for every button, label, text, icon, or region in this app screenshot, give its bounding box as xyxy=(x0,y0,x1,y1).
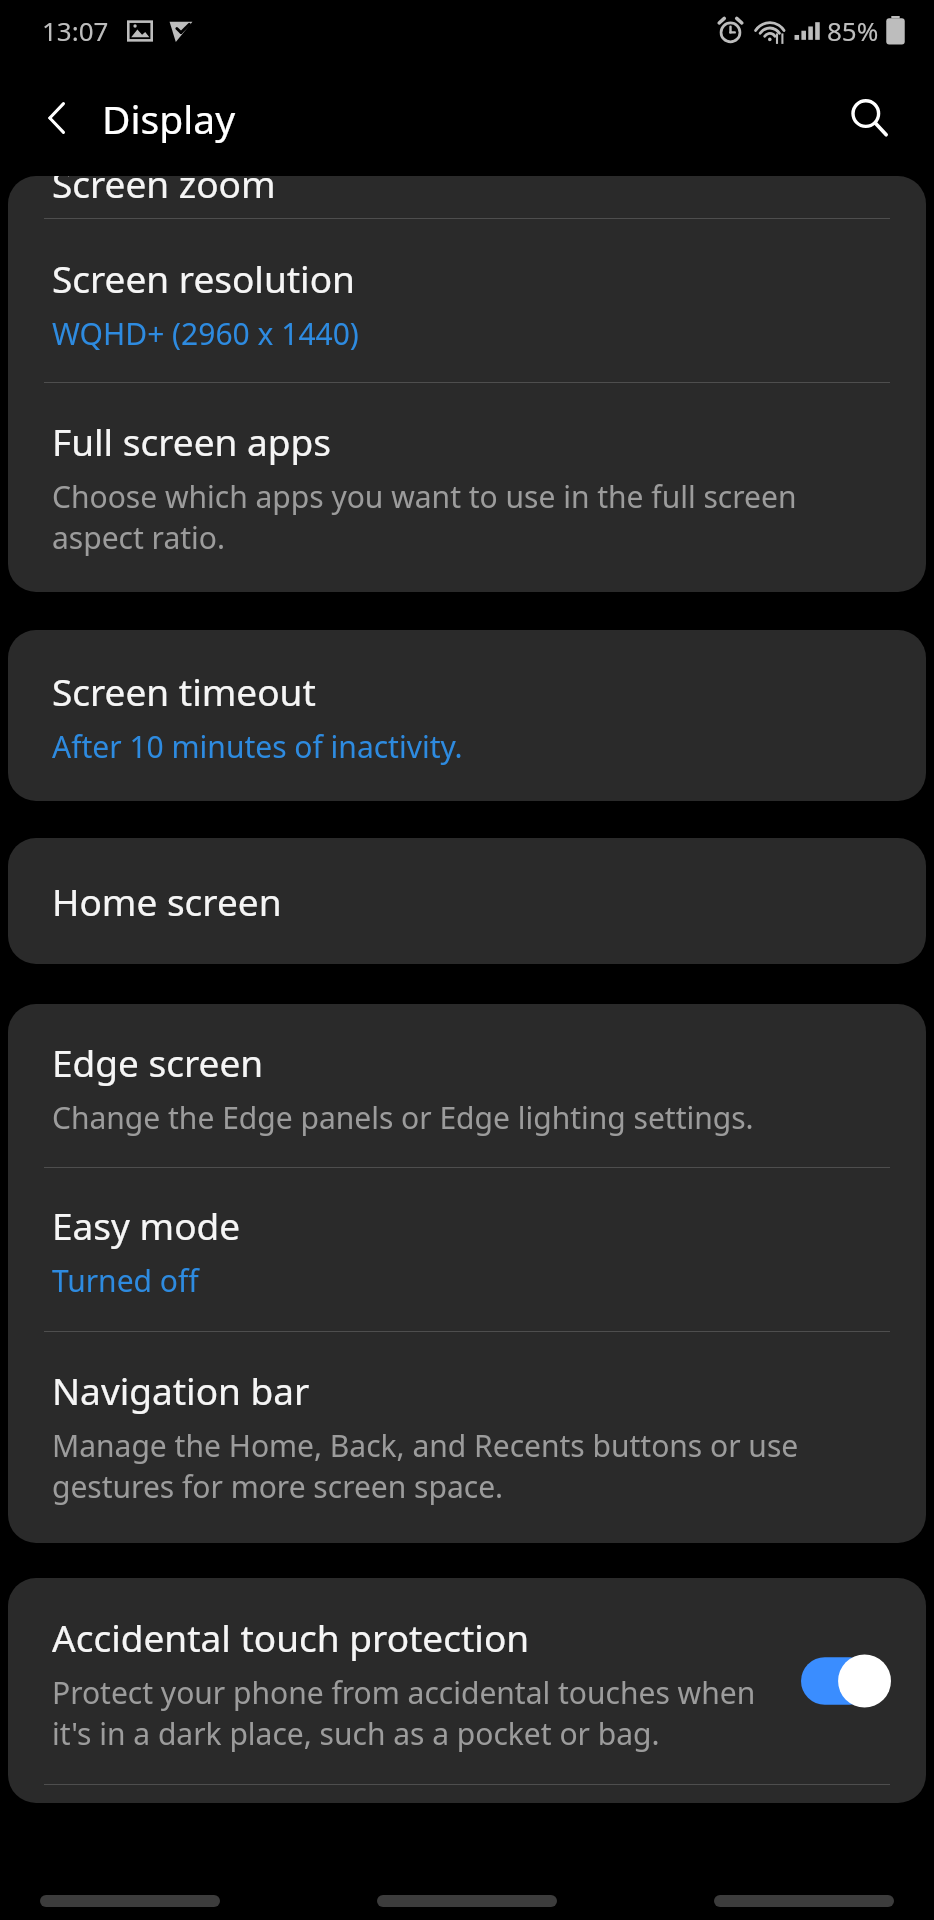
staticText: 85% xyxy=(827,13,879,48)
button[interactable]: Search xyxy=(832,81,906,155)
staticText: Choose which apps you want to use in the… xyxy=(52,476,886,558)
staticText: Screen resolution xyxy=(52,253,355,303)
staticText: Edge screen xyxy=(52,1037,264,1087)
button[interactable]: Navigation bar xyxy=(8,1332,926,1543)
button[interactable]: Screen zoom xyxy=(8,176,926,218)
staticText: 13:07 xyxy=(42,13,109,48)
staticText: Navigation bar xyxy=(52,1365,310,1415)
button[interactable]: Accidental touch protection xyxy=(8,1578,926,1784)
button[interactable]: Back xyxy=(714,1895,894,1907)
button[interactable]: Screen timeout xyxy=(8,630,926,801)
button[interactable]: Accidental touch protection, on xyxy=(796,1646,896,1716)
staticText: Easy mode xyxy=(52,1200,241,1250)
staticText: Screen zoom xyxy=(52,176,276,200)
staticText: Manage the Home, Back, and Recents butto… xyxy=(52,1425,886,1507)
staticText: WQHD+ (2960 x 1440) xyxy=(52,313,359,354)
staticText: Change the Edge panels or Edge lighting … xyxy=(52,1097,754,1138)
button[interactable]: Edge screen xyxy=(8,1004,926,1167)
staticText: Home screen xyxy=(52,876,282,926)
button[interactable]: Home screen xyxy=(8,838,926,964)
button[interactable]: Screen resolution xyxy=(8,219,926,382)
button[interactable]: Easy mode xyxy=(8,1168,926,1331)
button[interactable]: Full screen apps xyxy=(8,383,926,592)
staticText: Display xyxy=(102,92,236,145)
staticText: Full screen apps xyxy=(52,416,332,466)
staticText: Protect your phone from accidental touch… xyxy=(52,1672,788,1754)
staticText: Accidental touch protection xyxy=(52,1612,530,1662)
staticText: Turned off xyxy=(52,1260,199,1301)
button[interactable]: Back xyxy=(22,83,92,153)
staticText: After 10 minutes of inactivity. xyxy=(52,726,463,767)
button[interactable]: Recents xyxy=(40,1895,220,1907)
button[interactable]: Home xyxy=(377,1895,557,1907)
staticText: Screen timeout xyxy=(52,666,316,716)
